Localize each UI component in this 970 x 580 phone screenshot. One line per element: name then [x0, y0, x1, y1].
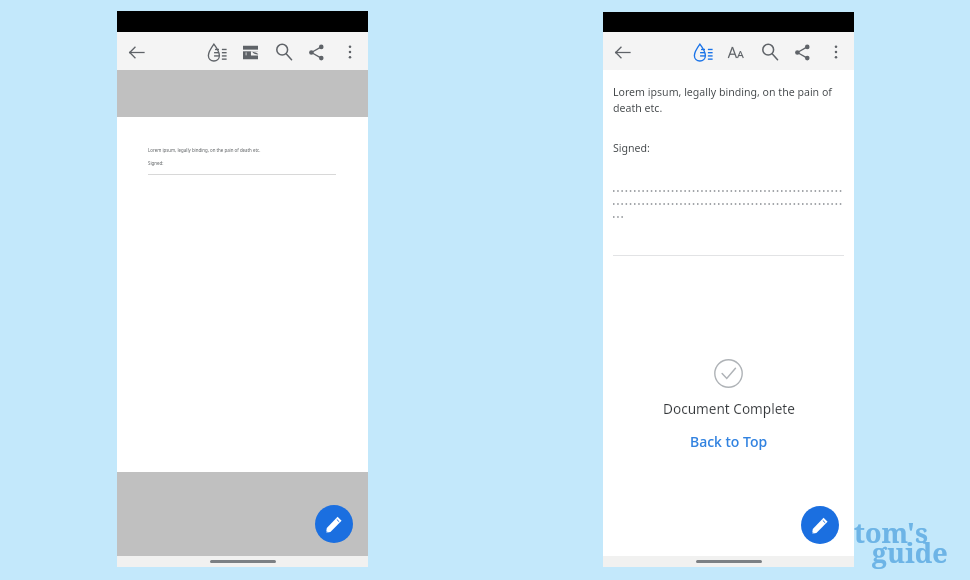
- staticText: Lorem ipsum, legally binding, on the pai…: [613, 85, 844, 115]
- button[interactable]: Text size: [720, 33, 753, 71]
- button[interactable]: Ink: [687, 33, 720, 71]
- button[interactable]: Share: [786, 33, 819, 71]
- button[interactable]: More options: [819, 33, 852, 71]
- staticText: Back to Top: [690, 432, 768, 451]
- button[interactable]: Back to Top: [687, 431, 771, 452]
- staticText: guide: [872, 534, 948, 571]
- staticText: tom's: [854, 514, 928, 551]
- button[interactable]: Search: [267, 33, 300, 71]
- staticText: Signed:: [148, 160, 164, 166]
- button[interactable]: Reader mode: [234, 33, 267, 71]
- button[interactable]: Ink: [201, 33, 234, 71]
- button[interactable]: Edit document: [315, 505, 353, 543]
- staticText: Document Complete: [663, 399, 795, 418]
- staticText: Lorem ipsum, legally binding, on the pai…: [148, 147, 261, 153]
- button[interactable]: Back: [120, 33, 153, 71]
- button[interactable]: More options: [333, 33, 366, 71]
- button[interactable]: Back: [606, 33, 639, 71]
- button[interactable]: Share: [300, 33, 333, 71]
- button[interactable]: Search: [753, 33, 786, 71]
- button[interactable]: Edit document: [801, 506, 839, 544]
- staticText: Signed:: [613, 141, 650, 155]
